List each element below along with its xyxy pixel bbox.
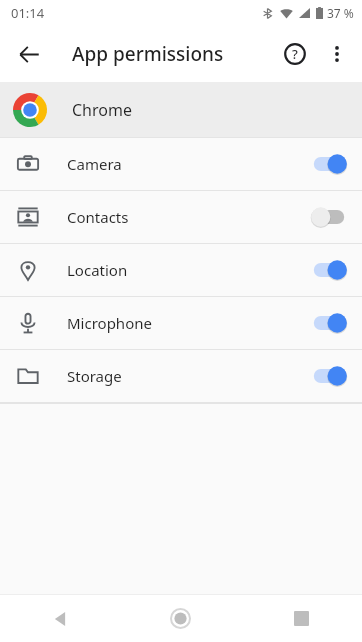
button[interactable]: Contacts (0, 191, 362, 243)
button[interactable]: Camera (0, 138, 362, 190)
button[interactable]: On (310, 256, 348, 284)
button[interactable]: Back (8, 33, 50, 75)
button[interactable]: Location (0, 244, 362, 296)
button[interactable]: Recent apps (241, 595, 362, 642)
button[interactable]: Storage (0, 350, 362, 402)
button[interactable]: On (310, 362, 348, 390)
button[interactable]: Help (274, 33, 316, 75)
button[interactable]: Back (0, 595, 120, 642)
staticText: Location (67, 260, 310, 280)
button[interactable]: Home (120, 595, 241, 642)
staticText: ? (292, 45, 298, 63)
button[interactable]: Chrome (0, 82, 362, 137)
staticText: Contacts (67, 207, 310, 227)
staticText: Camera (67, 154, 310, 174)
staticText: App permissions (72, 41, 224, 67)
staticText: 01:14 (11, 4, 45, 22)
button[interactable]: On (310, 309, 348, 337)
staticText: Storage (67, 366, 310, 386)
staticText: Chrome (72, 99, 132, 121)
button[interactable]: More options (316, 33, 358, 75)
staticText: Microphone (67, 313, 310, 333)
button[interactable]: On (310, 150, 348, 178)
button[interactable]: Off (310, 203, 348, 231)
button[interactable]: Microphone (0, 297, 362, 349)
staticText: 37 % (327, 5, 354, 21)
